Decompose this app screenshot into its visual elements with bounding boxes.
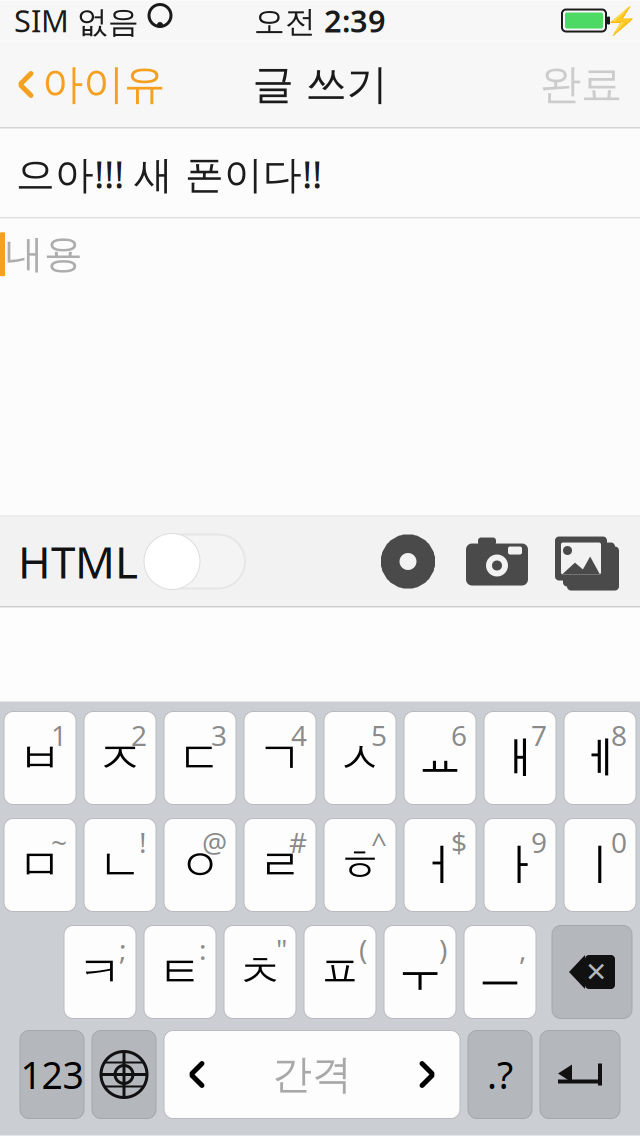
staticText: $ <box>451 823 467 861</box>
staticText: 으아!!! 새 폰이다!! <box>16 148 322 199</box>
button[interactable]: 2 <box>84 711 156 804</box>
staticText: ㅍ <box>318 945 362 999</box>
button[interactable]: Punctuation <box>468 1030 532 1118</box>
staticText: 7 <box>531 716 547 754</box>
button[interactable]: Numbers <box>20 1030 84 1118</box>
staticText: ; <box>119 930 127 968</box>
staticText: ㄱ <box>258 731 302 785</box>
staticText: ㅔ <box>578 731 622 785</box>
button[interactable]: : <box>144 925 216 1018</box>
staticText: ㅌ <box>158 945 202 999</box>
button[interactable]: ! <box>84 818 156 911</box>
button[interactable]: $ <box>404 818 476 911</box>
staticText: ㄷ <box>178 731 222 785</box>
staticText: ㄹ <box>258 838 302 892</box>
staticText: 1 <box>51 716 67 754</box>
staticText: 3 <box>211 716 227 754</box>
button[interactable]: ~ <box>4 818 76 911</box>
staticText: ㅂ <box>18 731 62 785</box>
staticText: .? <box>487 1050 513 1099</box>
staticText: 간격 <box>272 1050 352 1099</box>
staticText: 완료 <box>540 59 622 110</box>
button[interactable]: 완료 <box>540 49 640 120</box>
staticText: ㅛ <box>418 731 462 785</box>
staticText: 오전 2:39 <box>254 0 386 41</box>
button[interactable]: @ <box>164 818 236 911</box>
staticText: ㅇ <box>178 838 222 892</box>
staticText: ⚡ <box>604 5 637 36</box>
staticText: SIM 없음 <box>14 0 139 41</box>
button[interactable]: Settings <box>380 533 436 589</box>
staticText: ㅏ <box>498 838 542 892</box>
staticText: HTML <box>18 532 138 591</box>
staticText: ㅐ <box>498 731 542 785</box>
button[interactable]: 9 <box>484 818 556 911</box>
staticText: ✕ <box>585 957 607 987</box>
staticText: ㅁ <box>18 838 62 892</box>
button[interactable]: , <box>464 925 536 1018</box>
staticText: ㅣ <box>578 838 622 892</box>
button[interactable]: 6 <box>404 711 476 804</box>
button[interactable]: Delete <box>552 925 632 1018</box>
staticText: ~ <box>51 823 67 861</box>
button[interactable]: ^ <box>324 818 396 911</box>
staticText: 0 <box>611 823 627 861</box>
staticText: 123 <box>20 1050 83 1099</box>
staticText: ( <box>359 930 367 968</box>
button[interactable]: ) <box>384 925 456 1018</box>
staticText: ! <box>139 823 147 861</box>
button[interactable]: 3 <box>164 711 236 804</box>
button[interactable]: Return <box>540 1030 620 1118</box>
button[interactable]: 5 <box>324 711 396 804</box>
staticText: 아이유 <box>42 59 165 110</box>
staticText: 8 <box>611 716 627 754</box>
staticText: ㅋ <box>78 945 122 999</box>
button[interactable]: 0 <box>564 818 636 911</box>
button[interactable]: 1 <box>4 711 76 804</box>
staticText: ㅈ <box>98 731 142 785</box>
staticText: 2 <box>131 716 147 754</box>
staticText: ^ <box>371 823 387 861</box>
button[interactable]: 아이유 <box>0 49 165 120</box>
staticText: ㅓ <box>418 838 462 892</box>
staticText: # <box>289 823 307 861</box>
button[interactable]: ; <box>64 925 136 1018</box>
button[interactable]: 4 <box>244 711 316 804</box>
staticText: 9 <box>531 823 547 861</box>
staticText: 내용 <box>5 230 83 278</box>
staticText: , <box>519 930 527 968</box>
button[interactable]: 8 <box>564 711 636 804</box>
staticText: ㅎ <box>338 838 382 892</box>
staticText: ) <box>439 930 447 968</box>
staticText: @ <box>202 823 227 861</box>
button[interactable]: ( <box>304 925 376 1018</box>
button[interactable]: Photo Library <box>528 535 616 587</box>
staticText: ㅡ <box>478 945 522 999</box>
staticText: 4 <box>291 716 307 754</box>
staticText: ㄴ <box>98 838 142 892</box>
staticText: 5 <box>371 716 387 754</box>
staticText: 글 쓰기 <box>252 59 387 110</box>
button[interactable]: Next Keyboard <box>92 1030 156 1118</box>
button[interactable]: # <box>244 818 316 911</box>
staticText: ㅜ <box>398 945 442 999</box>
button[interactable]: Take Photo <box>436 537 528 585</box>
staticText: 6 <box>451 716 467 754</box>
button[interactable]: HTML <box>0 531 244 591</box>
staticText: : <box>199 930 207 968</box>
staticText: " <box>276 930 287 968</box>
button[interactable]: 간격 <box>164 1030 460 1118</box>
staticText: ㅊ <box>238 945 282 999</box>
button[interactable]: " <box>224 925 296 1018</box>
staticText: ㅅ <box>338 731 382 785</box>
button[interactable]: 7 <box>484 711 556 804</box>
